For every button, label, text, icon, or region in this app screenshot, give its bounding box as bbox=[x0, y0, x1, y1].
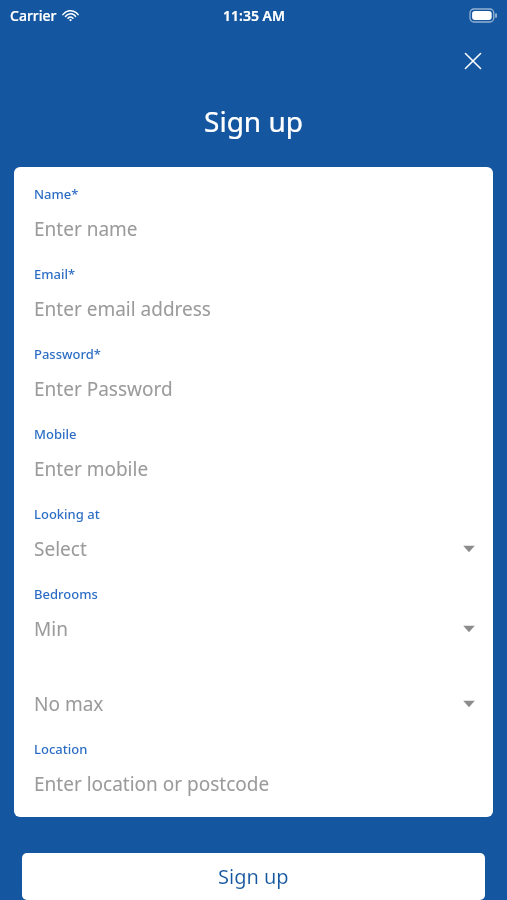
button[interactable]: Looking at bbox=[34, 505, 477, 585]
button[interactable]: Close bbox=[451, 39, 495, 83]
staticText: Bedrooms bbox=[34, 585, 98, 603]
button[interactable]: Name* bbox=[34, 185, 477, 265]
button[interactable]: Password* bbox=[34, 345, 477, 425]
staticText: Min bbox=[34, 616, 68, 642]
staticText: No max bbox=[34, 691, 104, 717]
staticText: Select bbox=[34, 536, 87, 562]
staticText: Location bbox=[34, 740, 88, 758]
staticText: Enter location or postcode bbox=[34, 771, 270, 797]
staticText: Sign up bbox=[204, 102, 303, 140]
staticText: Email* bbox=[34, 265, 76, 283]
staticText: Enter name bbox=[34, 216, 138, 242]
button[interactable]: Mobile bbox=[34, 425, 477, 505]
button[interactable]: Location bbox=[34, 740, 477, 801]
staticText: Password* bbox=[34, 345, 101, 363]
staticText: Looking at bbox=[34, 505, 100, 523]
button[interactable]: No max bbox=[34, 665, 477, 740]
button[interactable]: Email* bbox=[34, 265, 477, 345]
staticText: Mobile bbox=[34, 425, 77, 443]
staticText: Carrier bbox=[10, 6, 57, 25]
staticText: Enter mobile bbox=[34, 456, 149, 482]
staticText: Name* bbox=[34, 185, 79, 203]
staticText: Sign up bbox=[218, 863, 289, 890]
button[interactable]: Bedrooms bbox=[34, 585, 477, 665]
button[interactable]: Sign up bbox=[22, 853, 485, 900]
staticText: Enter Password bbox=[34, 376, 173, 402]
staticText: Enter email address bbox=[34, 296, 211, 322]
staticText: 11:35 AM bbox=[223, 6, 285, 25]
